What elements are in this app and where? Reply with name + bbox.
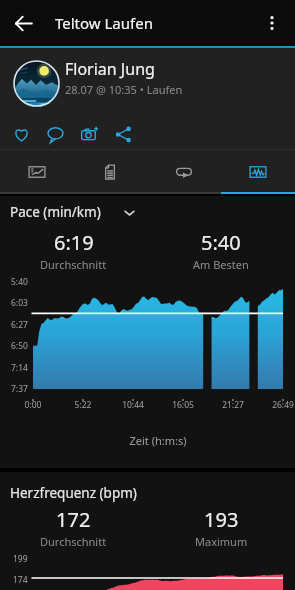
button[interactable]: Pace (min/km) [0,196,295,228]
staticText: Durchschnitt [40,534,107,549]
staticText: Herzfrequenz (bpm) [10,484,137,502]
button[interactable]: Charts [221,150,295,194]
staticText: 7:37 [11,383,28,395]
staticText: Maximum [195,534,248,549]
staticText: 5:40 [11,276,28,288]
button[interactable]: Laps [147,150,221,194]
button[interactable]: Back [0,0,46,46]
staticText: 28.07 @ 10:35 • Laufen [65,82,183,97]
staticText: Florian Jung [65,58,155,80]
staticText: 21:27 [215,399,251,411]
staticText: 5:22 [65,399,101,411]
staticText: 6:50 [11,340,28,352]
staticText: Zeit (h:m:s) [33,433,283,448]
button[interactable]: More options [249,0,295,46]
staticText: 174 [13,574,28,586]
staticText: 6:27 [11,319,28,331]
staticText: 7:14 [11,362,28,374]
staticText: 6:03 [11,297,28,309]
staticText: 172 [56,506,91,533]
staticText: 0:00 [15,399,51,411]
staticText: 193 [204,506,239,533]
staticText: 199 [13,553,28,565]
staticText: 26:49 [265,399,295,411]
button[interactable]: Like [4,117,38,151]
staticText: Pace (min/km) [10,203,101,221]
staticText: Teltow Laufen [55,13,153,33]
button[interactable]: Details [73,150,147,194]
staticText: 16:05 [165,399,201,411]
button[interactable]: Share [106,117,140,151]
button[interactable]: Map [0,150,73,194]
staticText: 5:40 [201,229,241,256]
staticText: Durchschnitt [40,257,107,272]
button[interactable]: Comment [38,117,72,151]
staticText: 6:19 [54,229,94,256]
staticText: 10:44 [115,399,151,411]
staticText: Am Besten [193,257,249,272]
button[interactable]: Add photo [72,117,106,151]
